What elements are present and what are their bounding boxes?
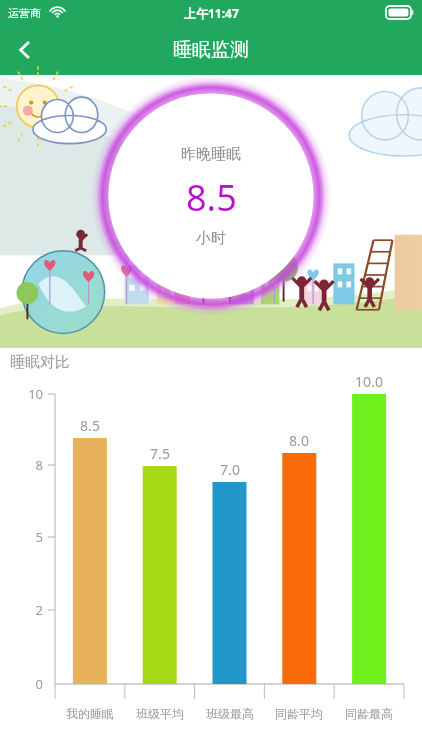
staticText: 2 — [0, 601, 43, 619]
staticText: 同龄平均 — [265, 706, 333, 721]
staticText: 8.5 — [186, 173, 237, 222]
staticText: 8 — [0, 456, 43, 474]
staticText: 0 — [0, 675, 43, 693]
button[interactable]: 8.5 — [56, 348, 124, 750]
staticText: 班级平均 — [126, 706, 194, 721]
button[interactable]: 7.0 — [196, 348, 264, 750]
staticText: 小时 — [196, 229, 226, 248]
button[interactable]: 10.0 — [335, 348, 403, 750]
staticText: 班级最高 — [196, 706, 264, 721]
staticText: 7.5 — [126, 444, 194, 463]
staticText: 8.0 — [265, 431, 333, 450]
staticText: 同龄最高 — [335, 706, 403, 721]
staticText: 7.0 — [196, 460, 264, 479]
button[interactable]: 8.0 — [265, 348, 333, 750]
staticText: 睡眠对比 — [10, 353, 70, 372]
staticText: 5 — [0, 528, 43, 546]
staticText: 睡眠监测 — [173, 38, 249, 62]
staticText: 10 — [0, 385, 43, 403]
staticText: 昨晚睡眠 — [181, 145, 241, 164]
staticText: 上午11:47 — [184, 5, 239, 21]
button[interactable]: Back — [0, 25, 50, 75]
staticText: 10.0 — [335, 372, 403, 391]
staticText: 我的睡眠 — [56, 706, 124, 721]
staticText: 8.5 — [56, 416, 124, 435]
staticText: 运营商 — [8, 6, 41, 20]
button[interactable]: 7.5 — [126, 348, 194, 750]
